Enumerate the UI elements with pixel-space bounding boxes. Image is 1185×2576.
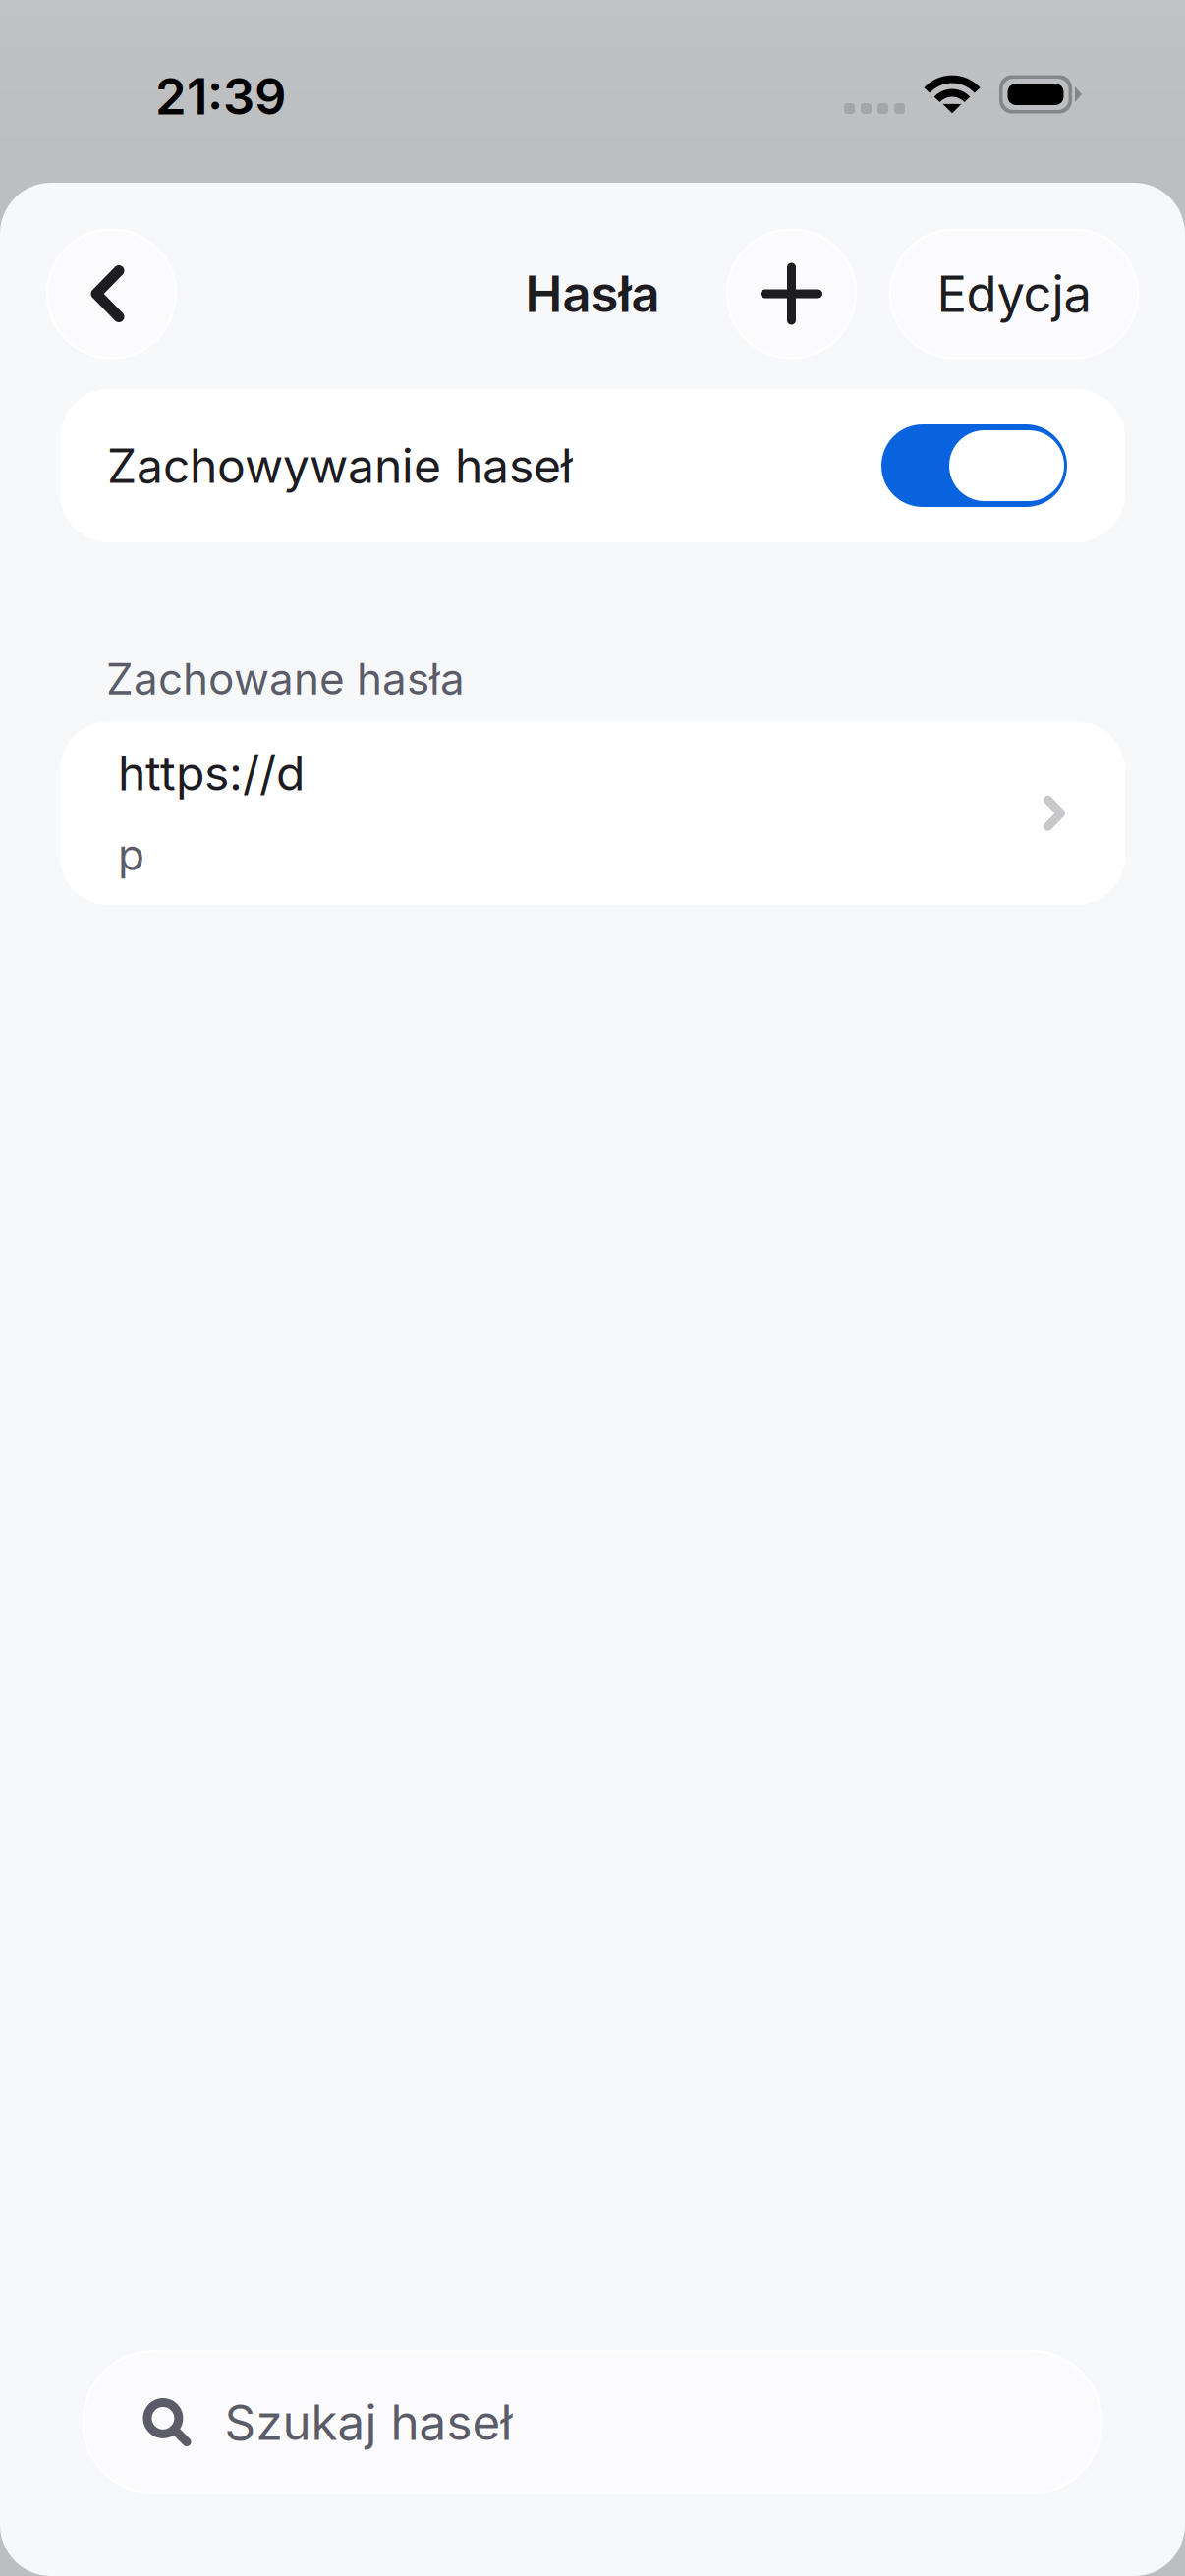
button[interactable]: Zachowywanie haseł (60, 389, 1125, 542)
button[interactable]: https://d (60, 721, 1125, 905)
staticText: Edycja (937, 264, 1091, 324)
staticText: https://d (118, 745, 305, 802)
button[interactable]: Dodaj (727, 229, 856, 358)
staticText: Hasła (525, 264, 660, 324)
button[interactable]: Szukaj haseł (83, 2351, 1102, 2493)
button[interactable]: Wstecz (47, 229, 176, 358)
staticText: Zachowywanie haseł (107, 437, 573, 494)
staticText: Zachowane hasła (106, 652, 465, 705)
staticText: 21:39 (155, 66, 286, 126)
staticText: Szukaj haseł (225, 2393, 512, 2452)
staticText: p (118, 828, 144, 881)
button[interactable]: Edycja (890, 229, 1138, 358)
